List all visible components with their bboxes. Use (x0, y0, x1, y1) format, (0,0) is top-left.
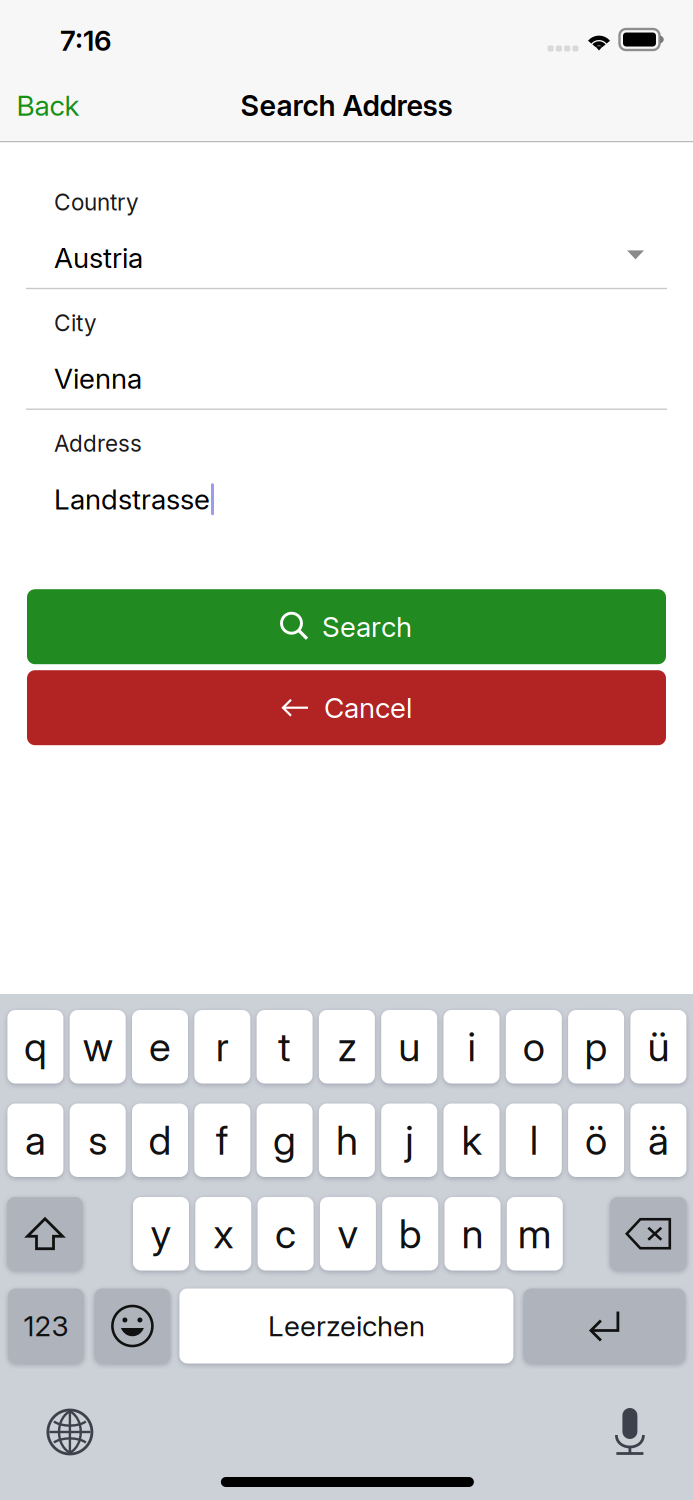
button[interactable]: y (133, 1197, 189, 1270)
staticText: y (150, 1210, 171, 1258)
staticText: b (399, 1210, 422, 1258)
button[interactable]: ü (630, 1010, 686, 1083)
button[interactable]: Emoji (94, 1288, 170, 1363)
staticText: q (24, 1023, 47, 1071)
staticText: i (467, 1023, 475, 1071)
button[interactable]: m (507, 1197, 563, 1270)
staticText: e (149, 1023, 171, 1071)
button[interactable]: z (319, 1010, 375, 1083)
staticText: Address (54, 430, 142, 457)
staticText: t (278, 1023, 291, 1071)
button[interactable]: l (506, 1103, 562, 1177)
button[interactable]: a (7, 1103, 63, 1177)
staticText: c (275, 1210, 296, 1258)
staticText: ö (585, 1116, 607, 1164)
staticText: g (273, 1116, 296, 1164)
button[interactable]: b (382, 1197, 438, 1270)
button[interactable]: Leerzeichen (179, 1288, 513, 1363)
button[interactable]: ö (568, 1103, 624, 1177)
staticText: ä (648, 1116, 669, 1164)
staticText: p (585, 1023, 608, 1071)
staticText: f (216, 1116, 229, 1164)
staticText: o (523, 1023, 545, 1071)
staticText: Leerzeichen (268, 1309, 425, 1343)
staticText: 7:16 (60, 24, 112, 57)
button[interactable]: e (132, 1010, 188, 1083)
button[interactable]: s (70, 1103, 126, 1177)
staticText: u (398, 1023, 420, 1071)
staticText: ü (647, 1023, 669, 1071)
button[interactable]: d (132, 1103, 188, 1177)
button[interactable]: i (443, 1010, 499, 1083)
staticText: Vienna (54, 362, 142, 395)
staticText: l (530, 1116, 538, 1164)
button[interactable]: Return (523, 1288, 685, 1363)
button[interactable]: p (568, 1010, 624, 1083)
button[interactable]: f (194, 1103, 250, 1177)
button[interactable]: Cancel (27, 670, 666, 745)
button[interactable]: Shift (7, 1197, 83, 1270)
staticText: City (54, 309, 97, 337)
button[interactable]: Back (0, 75, 96, 136)
staticText: d (148, 1116, 171, 1164)
button[interactable]: u (381, 1010, 437, 1083)
button[interactable]: k (443, 1103, 499, 1177)
button[interactable]: n (444, 1197, 500, 1270)
staticText: Cancel (324, 691, 412, 725)
button[interactable]: Delete (610, 1197, 687, 1270)
button[interactable]: t (257, 1010, 313, 1083)
button[interactable]: ä (630, 1103, 686, 1177)
staticText: x (213, 1210, 233, 1258)
staticText: w (83, 1023, 113, 1071)
button[interactable]: c (258, 1197, 314, 1270)
button[interactable]: x (195, 1197, 251, 1270)
button[interactable]: q (7, 1010, 63, 1083)
staticText: Country (54, 188, 139, 216)
button[interactable]: g (257, 1103, 313, 1177)
staticText: s (88, 1116, 107, 1164)
staticText: h (336, 1116, 358, 1164)
button[interactable]: o (506, 1010, 562, 1083)
staticText: 123 (23, 1309, 68, 1343)
button[interactable]: w (70, 1010, 126, 1083)
button[interactable]: Dictate (601, 1395, 659, 1469)
staticText: j (405, 1116, 413, 1164)
staticText: v (337, 1210, 358, 1258)
staticText: m (518, 1210, 552, 1258)
button[interactable]: Next keyboard (34, 1396, 106, 1468)
button[interactable]: v (320, 1197, 376, 1270)
button[interactable]: r (194, 1010, 250, 1083)
staticText: Back (16, 89, 79, 122)
staticText: Austria (54, 241, 143, 275)
button[interactable]: Search (27, 589, 666, 664)
staticText: Search Address (240, 88, 452, 123)
staticText: Landstrasse (54, 482, 210, 516)
staticText: Search (322, 610, 412, 644)
staticText: r (216, 1023, 229, 1071)
staticText: k (461, 1116, 481, 1164)
button[interactable]: j (381, 1103, 437, 1177)
staticText: a (25, 1116, 46, 1164)
staticText: z (337, 1023, 356, 1071)
staticText: n (461, 1210, 483, 1258)
button[interactable]: h (319, 1103, 375, 1177)
button[interactable]: 123 (8, 1288, 84, 1363)
